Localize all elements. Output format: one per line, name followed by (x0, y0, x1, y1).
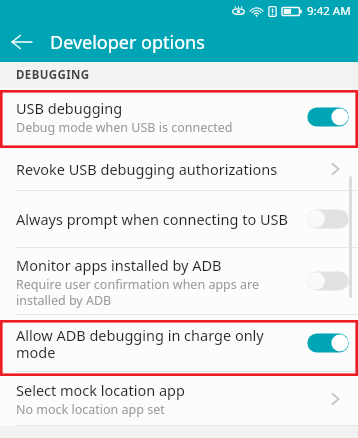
button[interactable] (306, 207, 350, 231)
button[interactable]: Always prompt when connecting to USB (0, 191, 358, 247)
staticText: Debug mode when USB is connected (16, 119, 233, 136)
button[interactable]: Open (320, 384, 350, 414)
button[interactable]: Monitor apps installed by ADB (0, 248, 358, 314)
button[interactable]: Revoke USB debugging authorizations (0, 147, 358, 190)
button[interactable]: Open (320, 154, 350, 184)
staticText: 9:42 AM (307, 3, 351, 19)
button[interactable]: Allow ADB debugging in charge only mode (0, 315, 358, 371)
button[interactable] (306, 269, 350, 293)
staticText: Select mock location app (16, 380, 185, 400)
staticText: Allow ADB debugging in charge only mode (16, 325, 300, 362)
staticText: Require user confirmation when apps are … (16, 276, 300, 308)
button[interactable]: USB debugging (0, 88, 358, 146)
button[interactable] (306, 331, 350, 355)
staticText: Revoke USB debugging authorizations (16, 159, 278, 179)
button[interactable]: Back (0, 22, 44, 62)
staticText: DEBUGGING (16, 67, 90, 83)
staticText: No mock location app set (16, 401, 165, 418)
staticText: USB debugging (16, 98, 123, 118)
staticText: Always prompt when connecting to USB (16, 209, 288, 229)
button[interactable] (306, 105, 350, 129)
button[interactable]: Select mock location app (0, 372, 358, 425)
staticText: Developer options (50, 30, 205, 55)
staticText: Monitor apps installed by ADB (16, 255, 222, 275)
